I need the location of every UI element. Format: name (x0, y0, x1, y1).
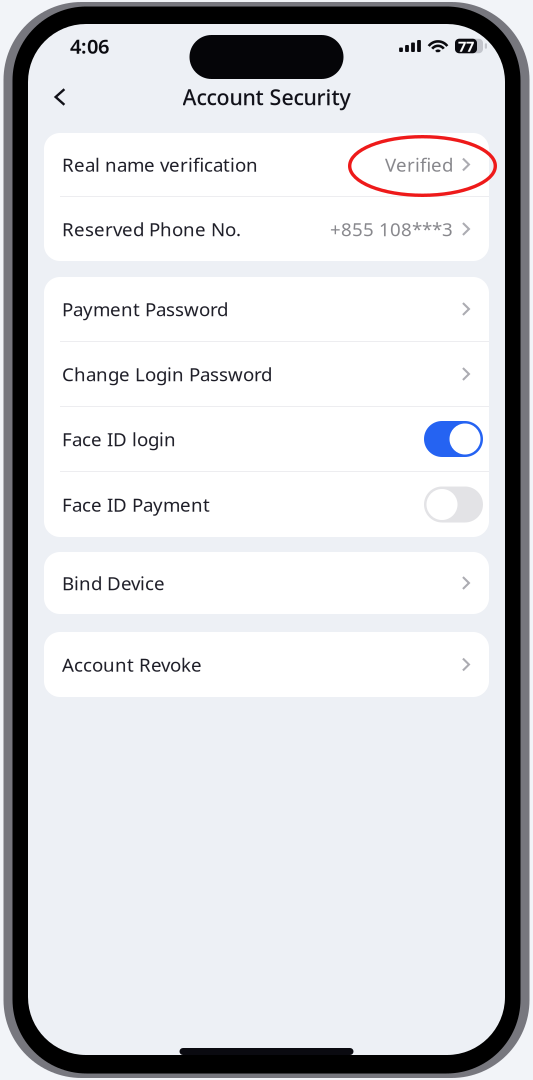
staticText: Bind Device (62, 571, 165, 595)
staticText: +855 108***3 (330, 217, 453, 241)
staticText: Account Security (182, 83, 350, 111)
staticText: Face ID login (62, 427, 176, 451)
staticText: Verified (385, 152, 453, 177)
staticText: Face ID Payment (62, 492, 210, 517)
staticText: 77 (458, 36, 474, 56)
staticText: Reserved Phone No. (62, 217, 241, 241)
staticText: Account Revoke (62, 652, 202, 677)
staticText: Payment Password (62, 297, 228, 321)
staticText: Change Login Password (62, 362, 272, 386)
button[interactable]: Reserved Phone No. (44, 197, 489, 261)
button[interactable]: Change Login Password (44, 342, 489, 406)
staticText: 4:06 (70, 33, 109, 59)
button[interactable]: Payment Password (44, 277, 489, 341)
button[interactable]: Account Revoke (44, 632, 489, 697)
staticText: Real name verification (62, 152, 258, 177)
button[interactable]: Real name verification (44, 133, 489, 196)
button[interactable]: Face ID Payment (44, 472, 489, 537)
button[interactable]: Back (37, 74, 83, 120)
button[interactable]: Face ID login (44, 407, 489, 471)
button[interactable]: Bind Device (44, 552, 489, 614)
